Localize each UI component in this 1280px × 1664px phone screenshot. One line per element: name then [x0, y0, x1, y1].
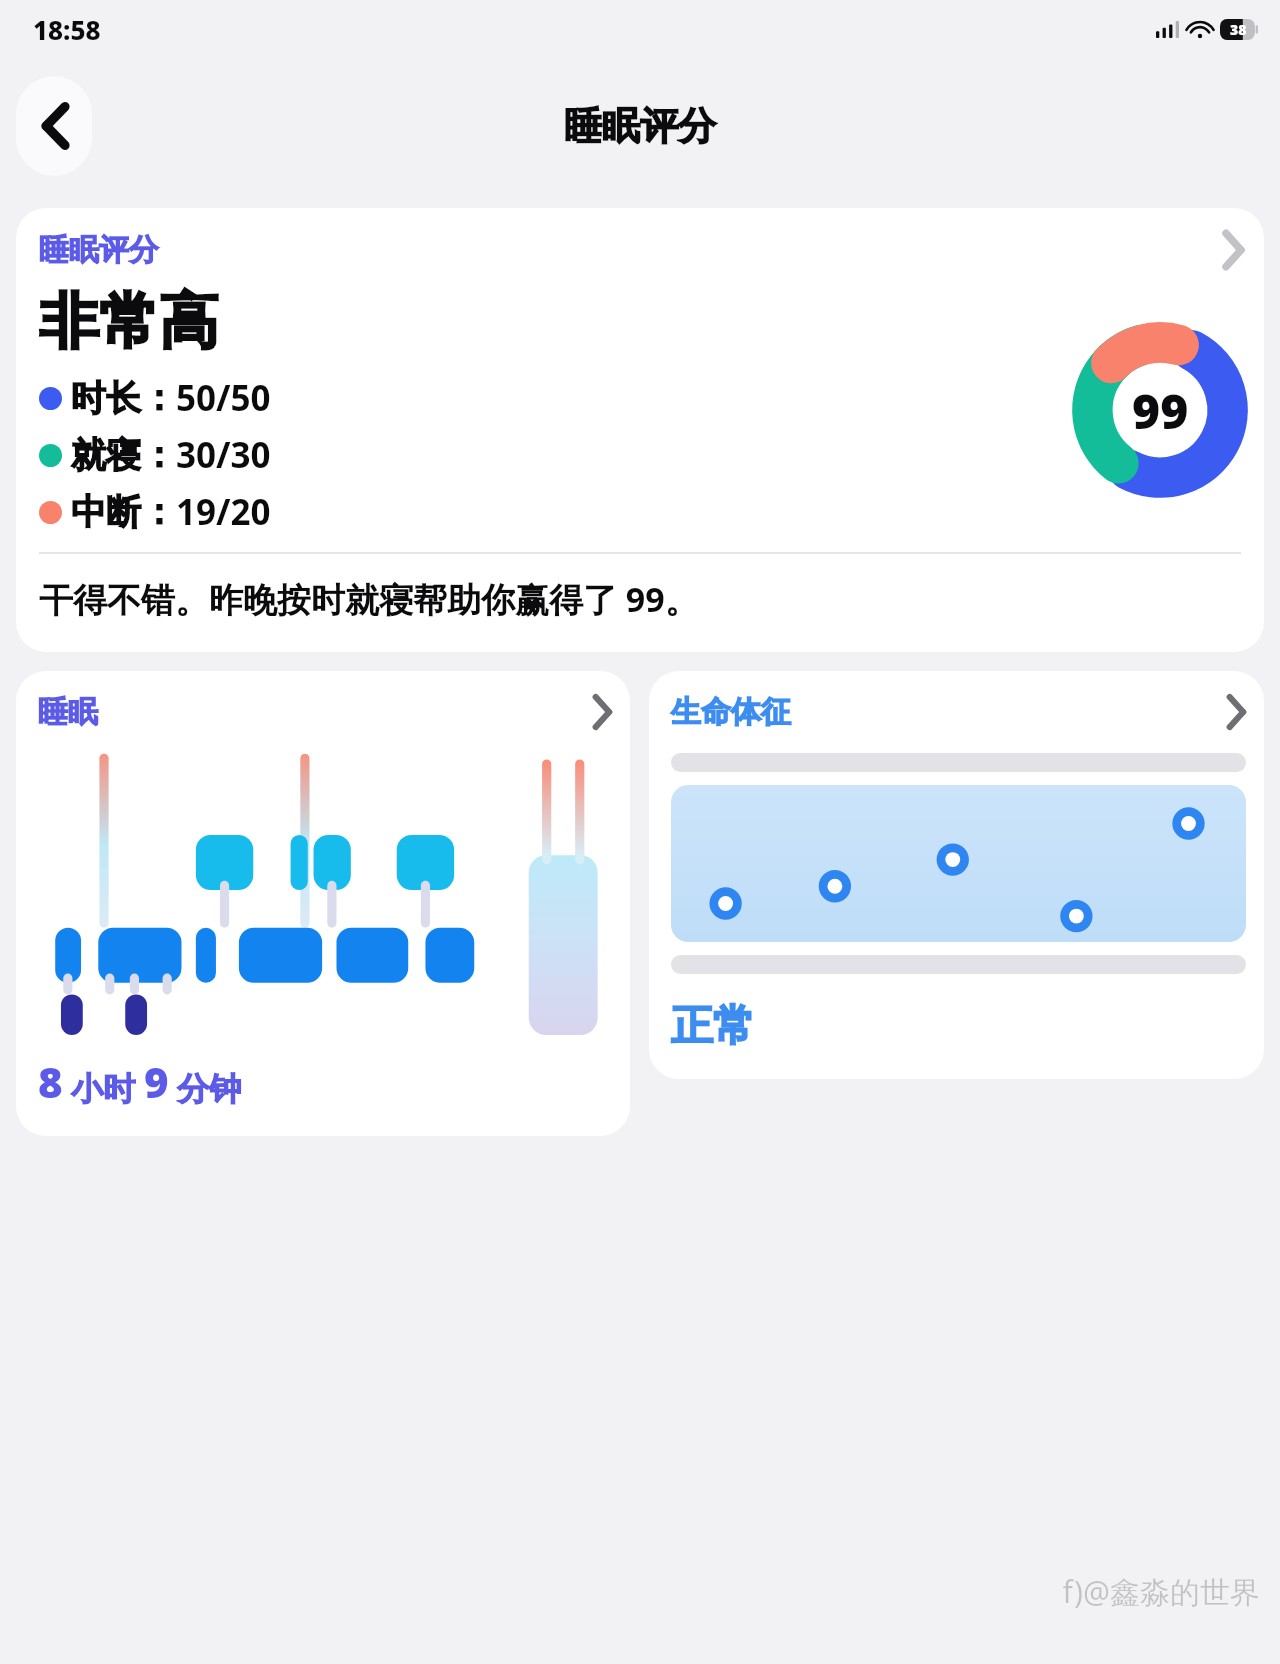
staticText: 生命体征 — [671, 693, 791, 731]
staticText: 38 — [1230, 20, 1247, 39]
staticText: 19/20 — [176, 488, 271, 536]
staticText: 30/30 — [176, 431, 271, 479]
staticText: 睡眠 — [38, 693, 98, 731]
button[interactable]: Back — [16, 76, 92, 176]
staticText: 8 — [38, 1053, 63, 1110]
staticText: f)@鑫淼的世界 — [1062, 1571, 1260, 1612]
staticText: 时长： — [71, 376, 176, 420]
staticText: 干得不错。昨晚按时就寝帮助你赢得了 99。 — [39, 576, 1230, 622]
staticText: 9 — [144, 1053, 169, 1110]
button[interactable]: 睡眠评分 — [16, 208, 1264, 652]
button[interactable]: 睡眠 — [16, 671, 630, 1136]
staticText: 非常高 — [39, 284, 219, 360]
staticText: 就寝： — [71, 433, 176, 477]
staticText: 睡眠评分 — [564, 102, 716, 150]
staticText: 99 — [1132, 378, 1189, 443]
staticText: 18:58 — [33, 12, 101, 47]
staticText: 50/50 — [176, 374, 271, 422]
staticText: 小时 — [63, 1066, 144, 1110]
staticText: 睡眠评分 — [39, 231, 159, 269]
staticText: 正常 — [671, 1000, 755, 1053]
staticText: 分钟 — [169, 1066, 242, 1110]
button[interactable]: 生命体征 — [649, 671, 1264, 1079]
staticText: 中断： — [71, 490, 176, 534]
